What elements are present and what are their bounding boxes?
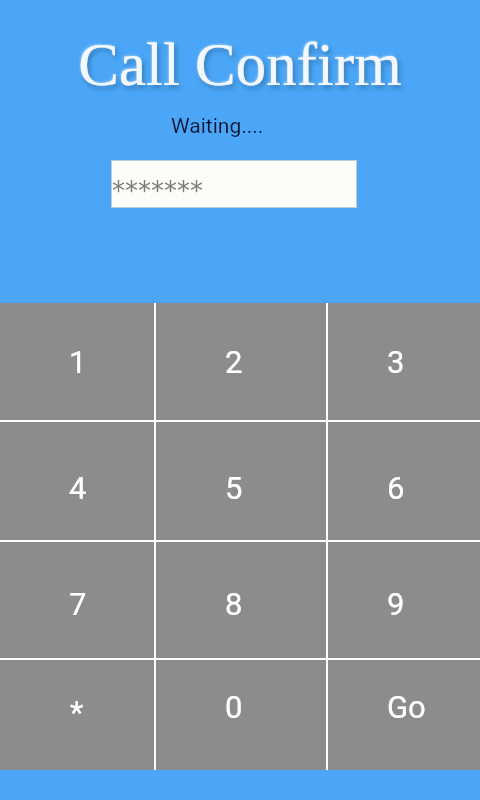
- staticText: 6: [387, 470, 405, 506]
- button[interactable]: [328, 303, 480, 420]
- button[interactable]: [328, 422, 480, 540]
- staticText: 2: [225, 344, 243, 380]
- button[interactable]: Password field: [112, 161, 356, 207]
- staticText: 4: [69, 470, 87, 506]
- button[interactable]: [0, 422, 154, 540]
- staticText: 8: [225, 586, 243, 622]
- staticText: *******: [112, 176, 203, 206]
- staticText: 0: [225, 689, 243, 725]
- button[interactable]: [328, 542, 480, 658]
- button[interactable]: [0, 303, 154, 420]
- staticText: Call Confirm: [0, 31, 480, 99]
- button[interactable]: [156, 303, 326, 420]
- button[interactable]: [156, 422, 326, 540]
- button[interactable]: [328, 660, 480, 770]
- button[interactable]: [0, 542, 154, 658]
- staticText: Call Confirm: [0, 31, 480, 99]
- staticText: 1: [69, 344, 87, 380]
- staticText: 5: [225, 470, 243, 506]
- button[interactable]: [0, 660, 154, 770]
- staticText: 3: [387, 344, 405, 380]
- staticText: *: [70, 694, 84, 730]
- staticText: Go: [387, 689, 426, 725]
- staticText: Waiting....: [171, 114, 264, 139]
- staticText: 9: [387, 586, 405, 622]
- staticText: 7: [69, 586, 87, 622]
- button[interactable]: [156, 542, 326, 658]
- button[interactable]: [156, 660, 326, 770]
